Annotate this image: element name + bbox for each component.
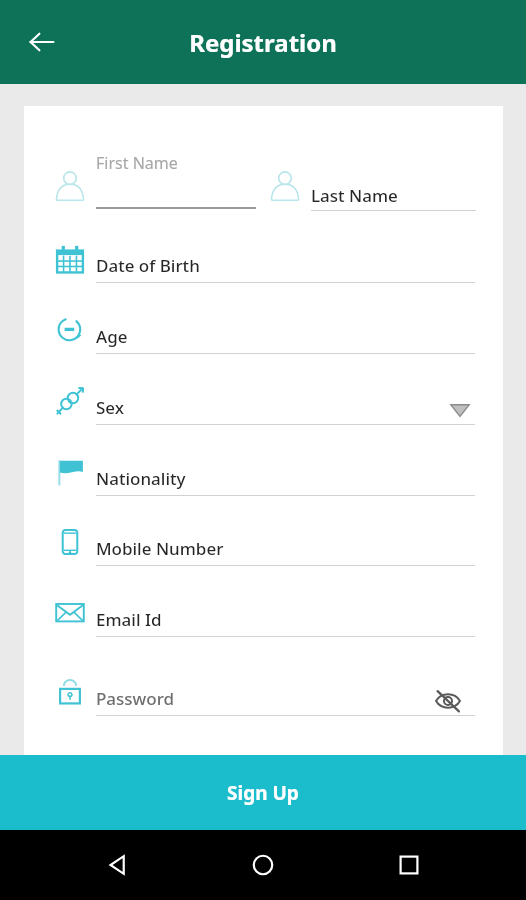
staticText: Email Id <box>96 608 162 631</box>
button[interactable]: Back <box>90 837 146 893</box>
staticText: Password <box>96 687 175 710</box>
staticText: Nationality <box>96 467 186 490</box>
staticText: Registration <box>189 26 337 59</box>
staticText: Sign Up <box>227 780 299 806</box>
button[interactable]: Select sex <box>442 392 478 428</box>
button[interactable]: Sign Up <box>0 755 526 830</box>
staticText: First Name <box>96 152 178 174</box>
staticText: Mobile Number <box>96 537 224 560</box>
staticText: Last Name <box>311 184 398 207</box>
staticText: Sex <box>96 396 124 419</box>
button[interactable]: Recents <box>381 837 437 893</box>
staticText: Date of Birth <box>96 254 200 277</box>
staticText: Age <box>96 325 128 348</box>
button[interactable]: Home <box>235 837 291 893</box>
button[interactable]: Show password <box>428 681 468 721</box>
button[interactable]: Back <box>16 16 68 68</box>
